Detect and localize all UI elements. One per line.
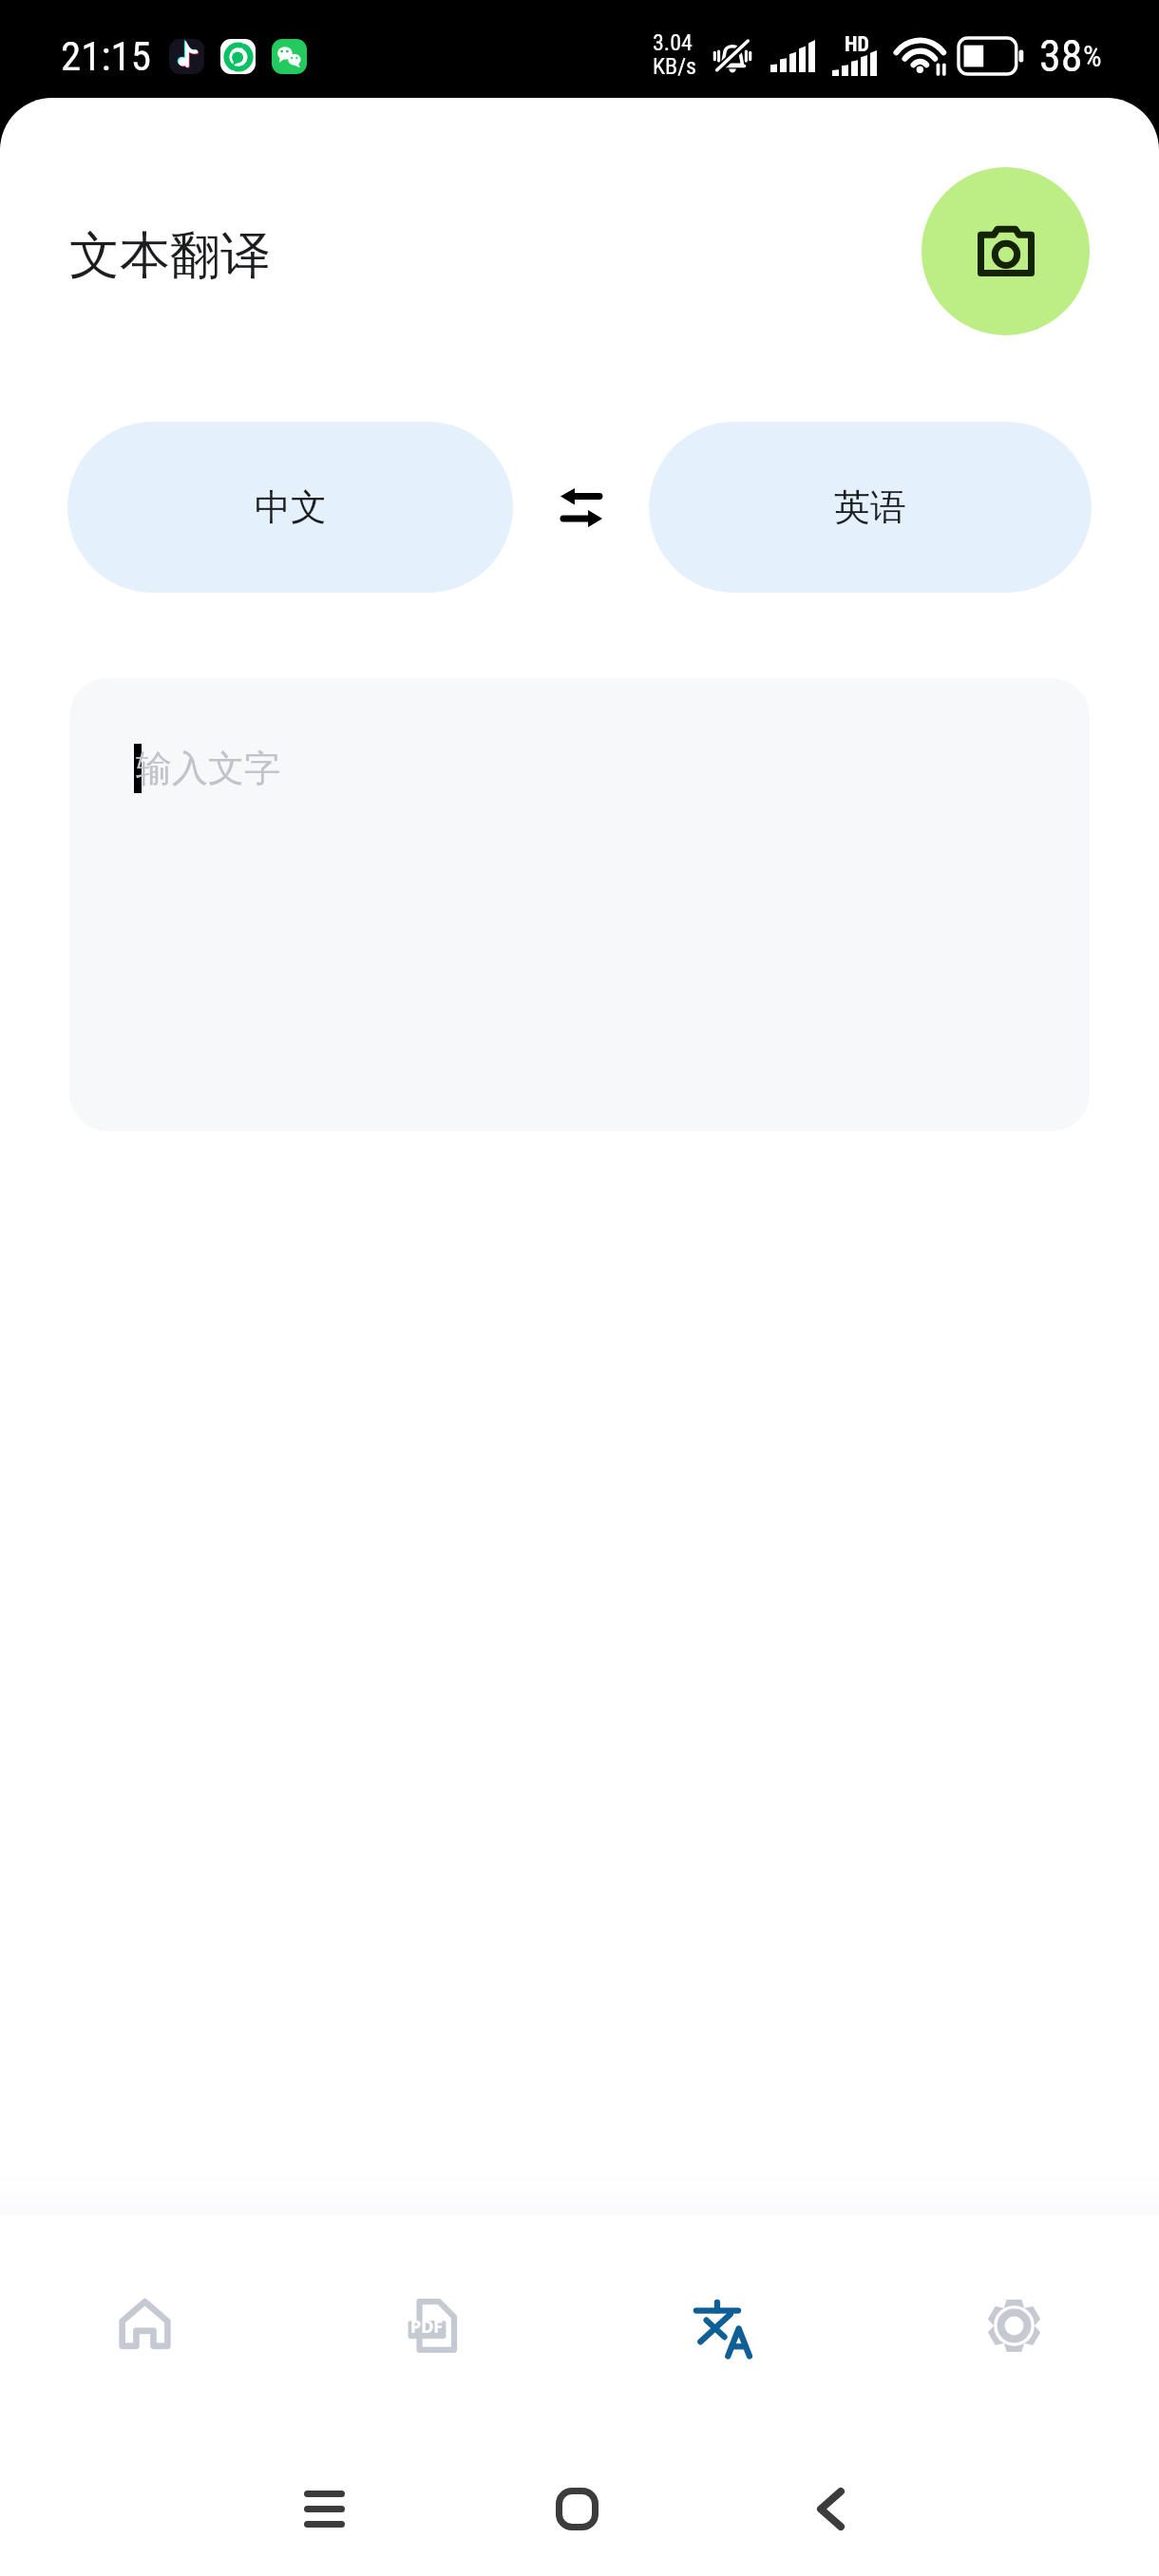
staticText: 中文 bbox=[255, 484, 327, 530]
button[interactable]: PDF documents bbox=[290, 2215, 579, 2441]
staticText: 21:15 bbox=[61, 32, 151, 80]
button[interactable]: Back bbox=[769, 2447, 892, 2570]
button[interactable]: Translate bbox=[579, 2215, 869, 2441]
button[interactable]: Recents bbox=[262, 2447, 386, 2570]
staticText: PDF bbox=[410, 2315, 444, 2339]
staticText: KB/s bbox=[653, 53, 697, 80]
button[interactable]: Camera translate bbox=[921, 167, 1090, 335]
button[interactable]: 输入文字 bbox=[69, 678, 1090, 1131]
button[interactable]: Swap languages bbox=[513, 422, 649, 593]
button[interactable]: Settings bbox=[869, 2215, 1159, 2441]
staticText: 38 bbox=[1039, 30, 1083, 82]
staticText: 输入文字 bbox=[136, 746, 280, 791]
staticText: 3.04 bbox=[653, 29, 693, 56]
button[interactable]: Home bbox=[515, 2447, 638, 2570]
staticText: HD bbox=[845, 32, 869, 57]
staticText: % bbox=[1083, 39, 1102, 73]
staticText: 英语 bbox=[834, 484, 906, 530]
button[interactable]: Home bbox=[0, 2215, 290, 2441]
button[interactable]: 英语 bbox=[649, 422, 1092, 593]
button[interactable]: 中文 bbox=[67, 422, 513, 593]
staticText: 文本翻译 bbox=[69, 224, 271, 288]
